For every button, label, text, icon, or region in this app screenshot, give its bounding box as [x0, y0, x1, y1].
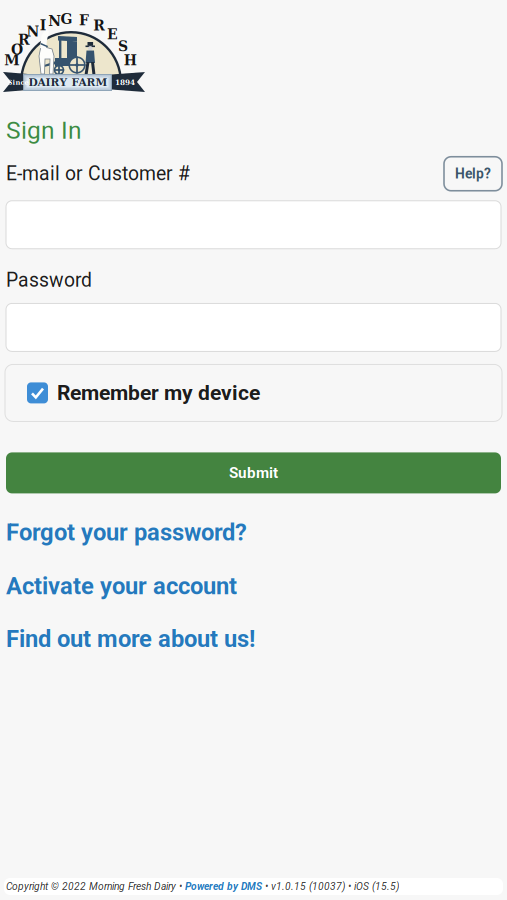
staticText: Sign In	[6, 116, 82, 145]
button[interactable]: Help?	[444, 157, 502, 191]
staticText: R	[18, 31, 30, 48]
staticText: Password	[6, 269, 92, 291]
staticText: N	[26, 23, 39, 40]
staticText: Find out more about us!	[6, 625, 255, 653]
button[interactable]: Remember my device	[5, 364, 502, 421]
staticText: N	[48, 13, 61, 29]
staticText: I	[40, 17, 47, 33]
staticText: R	[93, 17, 105, 34]
staticText: Submit	[229, 464, 278, 482]
staticText: E-mail or Customer #	[6, 162, 190, 185]
staticText: G	[61, 11, 73, 27]
staticText: Copyright © 2022 Morning Fresh Dairy •	[6, 880, 185, 892]
staticText: Forgot your password?	[6, 518, 247, 546]
staticText: Activate your account	[6, 572, 237, 600]
staticText: Powered by DMS	[185, 880, 262, 892]
staticText: S	[118, 38, 128, 54]
button[interactable]: Activate your account	[0, 572, 507, 600]
button[interactable]: Find out more about us!	[0, 625, 507, 653]
staticText: E	[107, 26, 118, 42]
staticText: F	[79, 12, 89, 28]
staticText: DAIRY FARM	[28, 76, 107, 89]
staticText: H	[124, 52, 137, 69]
staticText: M	[4, 52, 19, 69]
button[interactable]: Powered by DMS	[185, 880, 262, 892]
staticText: • v1.0.15 (10037) • iOS (15.5)	[262, 880, 399, 892]
staticText: Since	[7, 79, 28, 86]
staticText: Help?	[455, 166, 491, 182]
staticText: 1894	[115, 78, 135, 87]
staticText: O	[11, 41, 23, 58]
button[interactable]: Forgot your password?	[0, 518, 507, 546]
button[interactable]: Submit	[6, 452, 501, 493]
staticText: Remember my device	[57, 381, 260, 405]
